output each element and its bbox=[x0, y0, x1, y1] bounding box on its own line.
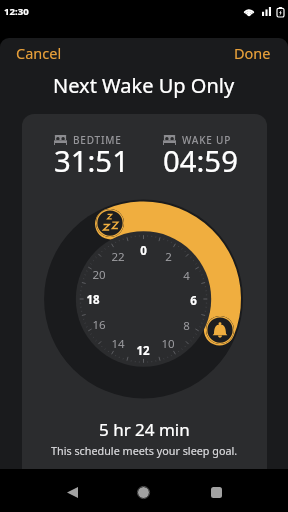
staticText: 0 bbox=[140, 243, 147, 259]
staticText: 14 bbox=[111, 336, 125, 352]
button[interactable]: Back bbox=[52, 472, 92, 512]
staticText: 04:59 bbox=[163, 141, 238, 181]
staticText: 5 hr 24 min bbox=[99, 418, 190, 441]
button[interactable]: Home bbox=[123, 472, 163, 512]
staticText: 4 bbox=[183, 268, 190, 284]
button[interactable]: Cancel bbox=[8, 39, 70, 67]
staticText: 12:30 bbox=[4, 5, 29, 18]
staticText: 6 bbox=[190, 293, 197, 309]
button[interactable]: Wake up handle bbox=[206, 316, 234, 344]
staticText: BEDTIME bbox=[73, 133, 122, 147]
staticText: 2 bbox=[165, 249, 172, 265]
staticText: 31:51 bbox=[54, 141, 129, 181]
staticText: 8 bbox=[183, 318, 190, 334]
staticText: This schedule meets your sleep goal. bbox=[51, 443, 238, 458]
staticText: 18 bbox=[86, 292, 100, 308]
staticText: 22 bbox=[111, 249, 125, 265]
staticText: Next Wake Up Only bbox=[53, 72, 235, 99]
staticText: 10 bbox=[161, 336, 175, 352]
staticText: Done bbox=[234, 43, 271, 63]
staticText: Cancel bbox=[16, 43, 62, 63]
staticText: 20 bbox=[92, 267, 106, 283]
staticText: WAKE UP bbox=[182, 133, 232, 147]
button[interactable]: Recents bbox=[196, 472, 236, 512]
button[interactable]: Done bbox=[226, 39, 279, 67]
staticText: 12 bbox=[136, 343, 150, 359]
button[interactable]: Bedtime handle bbox=[96, 209, 124, 237]
staticText: 16 bbox=[92, 317, 106, 333]
